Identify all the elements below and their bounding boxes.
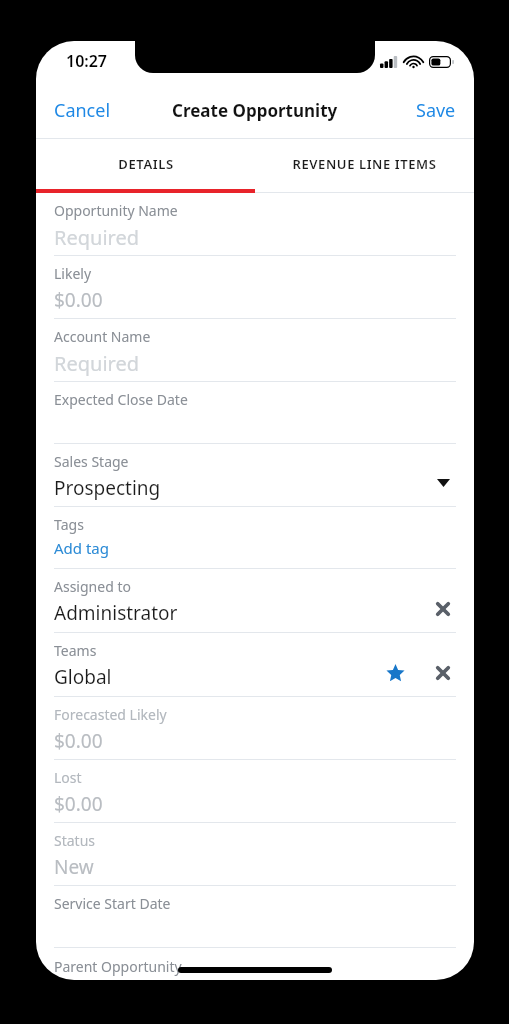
staticText: New [54, 854, 94, 880]
staticText: Prospecting [54, 475, 161, 501]
button[interactable]: Expected Close Date [54, 382, 456, 444]
staticText: Required [54, 224, 139, 251]
staticText: Global [54, 664, 112, 690]
staticText: Forecasted Likely [54, 705, 167, 724]
button[interactable]: REVENUE LINE ITEMS [255, 139, 474, 189]
button[interactable]: Lost [54, 760, 456, 823]
other: Open sales stage picker [430, 470, 456, 496]
button[interactable]: Account Name [54, 319, 456, 382]
staticText: DETAILS [118, 155, 174, 173]
button[interactable]: Assigned to [54, 569, 456, 633]
staticText: Tags [54, 515, 84, 534]
button[interactable]: Sales Stage [54, 444, 456, 507]
staticText: Likely [54, 264, 92, 283]
staticText: $0.00 [54, 287, 103, 313]
staticText: $0.00 [54, 791, 103, 817]
staticText: Required [54, 350, 139, 377]
button[interactable]: Tags [54, 507, 456, 569]
button[interactable]: Teams [54, 633, 456, 697]
staticText: Lost [54, 768, 82, 787]
staticText: REVENUE LINE ITEMS [292, 155, 437, 173]
staticText: Opportunity Name [54, 201, 178, 220]
button[interactable]: Forecasted Likely [54, 697, 456, 760]
button[interactable]: Primary team [382, 660, 408, 686]
staticText: Cancel [54, 98, 111, 123]
staticText: Save [416, 98, 456, 123]
button[interactable]: Clear [430, 660, 456, 686]
staticText: Expected Close Date [54, 390, 188, 409]
button[interactable]: Opportunity Name [54, 193, 456, 256]
staticText: Parent Opportunity [54, 957, 182, 976]
staticText: Administrator [54, 600, 178, 626]
button[interactable]: DETAILS [36, 139, 255, 189]
staticText: $0.00 [54, 728, 103, 754]
staticText: Account Name [54, 327, 151, 346]
button[interactable]: Cancel [36, 90, 129, 131]
button[interactable]: Save [398, 90, 474, 131]
button[interactable]: Clear [430, 596, 456, 622]
staticText: 10:27 [66, 50, 108, 72]
staticText: Teams [54, 641, 97, 660]
staticText: Status [54, 831, 96, 850]
button[interactable]: Service Start Date [54, 886, 456, 948]
button[interactable]: Status [54, 823, 456, 886]
button[interactable]: Likely [54, 256, 456, 319]
staticText: Create Opportunity [172, 99, 338, 122]
staticText: Service Start Date [54, 894, 171, 913]
staticText: Add tag [54, 538, 109, 558]
staticText: Assigned to [54, 577, 131, 596]
staticText: Sales Stage [54, 452, 129, 471]
